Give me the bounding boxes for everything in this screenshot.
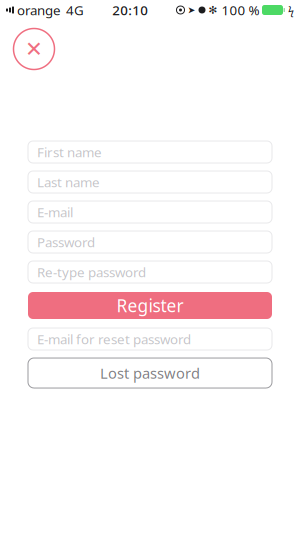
staticText: Re-type password [37,263,146,281]
staticText: E-mail [37,203,73,221]
staticText: Password [37,233,95,251]
staticText: ✕ [25,37,43,61]
staticText: 20:10 [112,1,148,19]
staticText: ✻ [208,4,217,16]
staticText: Register [116,294,183,317]
staticText: E-mail for reset password [37,330,191,348]
button[interactable]: Register [28,292,272,319]
staticText: 4G [66,1,84,19]
staticText: Last name [37,173,100,191]
button[interactable]: Close [12,27,56,71]
staticText: 100 % [221,1,259,19]
staticText: ϟ [288,3,294,17]
staticText: orange [17,1,61,19]
staticText: ➤ [187,5,195,15]
staticText: First name [37,143,102,161]
button[interactable]: Lost password [28,358,272,388]
staticText: Lost password [100,363,200,383]
